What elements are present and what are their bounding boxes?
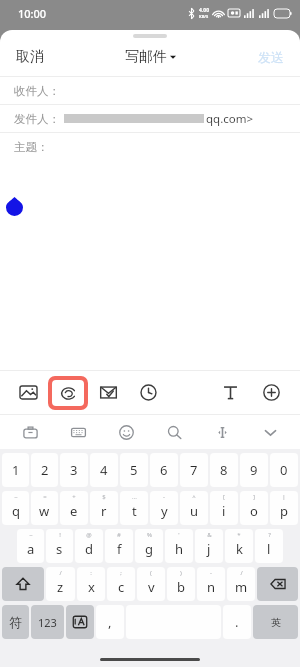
button[interactable]: 收件人：: [0, 77, 300, 104]
button[interactable]: ^: [180, 491, 208, 525]
button[interactable]: +: [60, 491, 88, 525]
button[interactable]: Emoji: [102, 415, 150, 449]
staticText: w: [39, 502, 50, 520]
button[interactable]: Insert image: [8, 371, 48, 414]
button[interactable]: Clipboard: [6, 415, 54, 449]
button[interactable]: 发送: [242, 41, 300, 73]
staticText: z: [57, 578, 64, 596]
button[interactable]: 主题：: [0, 133, 300, 160]
button[interactable]: 0: [270, 453, 298, 487]
staticText: !: [59, 531, 61, 539]
button[interactable]: (: [137, 567, 165, 601]
staticText: ;: [120, 569, 122, 577]
button[interactable]: 取消: [0, 40, 60, 74]
button[interactable]: Move cursor: [198, 415, 246, 449]
button[interactable]: Search: [150, 415, 198, 449]
button[interactable]: =: [31, 491, 58, 525]
staticText: h: [175, 540, 184, 558]
button[interactable]: *: [225, 529, 253, 563]
staticText: &: [207, 531, 212, 539]
staticText: $: [102, 493, 106, 501]
button[interactable]: ): [167, 567, 195, 601]
staticText: @: [86, 531, 92, 539]
button[interactable]: 写邮件: [115, 42, 186, 72]
button[interactable]: Shift: [2, 567, 44, 601]
staticText: r: [101, 502, 107, 520]
staticText: 2: [41, 461, 49, 479]
button[interactable]: 2: [31, 453, 58, 487]
staticText: /: [59, 569, 62, 577]
staticText: 发件人：: [14, 112, 60, 126]
staticText: /: [240, 569, 243, 577]
button[interactable]: 5: [120, 453, 148, 487]
staticText: 0: [280, 461, 288, 479]
button[interactable]: 9: [240, 453, 268, 487]
staticText: 123: [38, 615, 57, 630]
button[interactable]: ]: [240, 491, 268, 525]
staticText: 发送: [258, 49, 284, 65]
button[interactable]: Keyboard layout: [54, 415, 102, 449]
button[interactable]: &: [195, 529, 223, 563]
button[interactable]: $: [90, 491, 118, 525]
button[interactable]: Signature: [52, 380, 84, 406]
staticText: u: [190, 502, 199, 520]
button[interactable]: ...: [120, 491, 148, 525]
button[interactable]: 6: [150, 453, 178, 487]
staticText: f: [117, 540, 122, 558]
button[interactable]: #: [105, 529, 133, 563]
button[interactable]: %: [135, 529, 163, 563]
staticText: |: [282, 493, 286, 501]
staticText: 6: [160, 461, 168, 479]
button[interactable]: 1: [2, 453, 29, 487]
button[interactable]: 7: [180, 453, 208, 487]
button[interactable]: !: [46, 529, 73, 563]
staticText: 9: [250, 461, 258, 479]
button[interactable]: |: [270, 491, 298, 525]
button[interactable]: 8: [210, 453, 238, 487]
staticText: o: [250, 502, 258, 520]
button[interactable]: Schedule send: [128, 371, 169, 414]
staticText: s: [56, 540, 63, 558]
button[interactable]: 123: [31, 605, 64, 639]
button[interactable]: 发件人：: [0, 105, 300, 132]
staticText: b: [177, 578, 185, 596]
staticText: p: [280, 502, 288, 520]
staticText: ^: [192, 493, 196, 501]
button[interactable]: Collapse: [246, 415, 294, 449]
button[interactable]: .: [223, 605, 251, 639]
staticText: e: [70, 502, 78, 520]
button[interactable]: ?: [255, 529, 283, 563]
staticText: -: [163, 493, 165, 501]
button[interactable]: More: [251, 371, 292, 414]
button[interactable]: ;: [107, 567, 135, 601]
button[interactable]: Text format: [210, 371, 251, 414]
button[interactable]: 4: [90, 453, 118, 487]
staticText: 10:00: [18, 6, 47, 21]
button[interactable]: -: [197, 567, 225, 601]
staticText: 7: [190, 461, 198, 479]
button[interactable]: Mail template: [88, 371, 128, 414]
button[interactable]: 英: [253, 605, 298, 639]
staticText: (: [150, 569, 152, 577]
staticText: c: [118, 578, 125, 596]
button[interactable]: @: [75, 529, 103, 563]
staticText: +: [72, 493, 76, 501]
staticText: l: [267, 540, 271, 558]
staticText: k: [236, 540, 243, 558]
staticText: -: [210, 569, 212, 577]
button[interactable]: -: [150, 491, 178, 525]
button[interactable]: :: [77, 567, 105, 601]
button[interactable]: [: [210, 491, 238, 525]
button[interactable]: 3: [60, 453, 88, 487]
staticText: 收件人：: [14, 84, 60, 98]
button[interactable]: ': [165, 529, 193, 563]
button[interactable]: 符: [2, 605, 29, 639]
button[interactable]: Language: [66, 605, 94, 639]
button[interactable]: Backspace: [257, 567, 298, 601]
button[interactable]: ~: [17, 529, 44, 563]
button[interactable]: ,: [96, 605, 124, 639]
button[interactable]: ~: [2, 491, 29, 525]
button[interactable]: /: [46, 567, 75, 601]
button[interactable]: /: [227, 567, 255, 601]
